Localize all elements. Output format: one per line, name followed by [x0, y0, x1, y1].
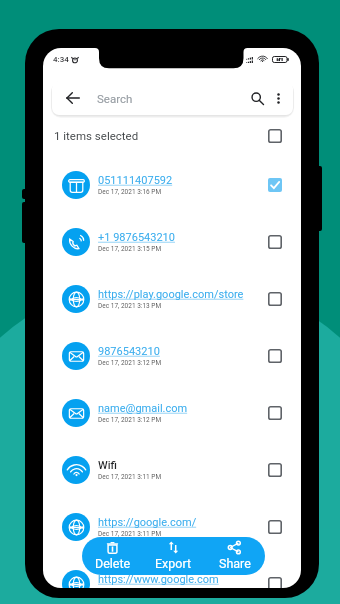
staticText: https://play.google.com/store	[98, 288, 244, 301]
button[interactable]: Select item	[268, 292, 282, 306]
staticText: Dec 17, 2021 3:12 PM	[98, 359, 162, 367]
staticText: Dec 17, 2021 3:16 PM	[98, 188, 162, 196]
button[interactable]: 051111407592	[43, 156, 301, 213]
button[interactable]: 9876543210	[43, 327, 301, 384]
staticText: Export	[155, 556, 192, 571]
staticText: https://www.google.com	[98, 573, 219, 586]
staticText: 4:34	[53, 55, 69, 64]
staticText: Dec 17, 2021 3:15 PM	[98, 245, 162, 253]
staticText: 1 items selected	[54, 129, 139, 142]
staticText: 9876543210	[98, 345, 160, 358]
staticText: Dec 17, 2021 3:11 PM	[98, 473, 162, 481]
button[interactable]: Wifi	[43, 441, 301, 498]
button[interactable]: Select item	[268, 406, 282, 420]
button[interactable]: Delete	[82, 537, 143, 575]
button[interactable]: https://www.google.com	[43, 555, 301, 588]
button[interactable]: +1 9876543210	[43, 213, 301, 270]
staticText: Delete	[95, 556, 131, 571]
staticText: 051111407592	[98, 174, 173, 187]
button[interactable]: https://google.com/	[43, 498, 301, 555]
staticText: Dec 17, 2021 3:12 PM	[98, 416, 162, 424]
button[interactable]: Search	[246, 87, 268, 109]
button[interactable]: Export	[143, 537, 204, 575]
button[interactable]: Back	[62, 87, 84, 109]
staticText: name@gmail.com	[98, 402, 188, 415]
staticText: Wifi	[98, 459, 117, 472]
staticText: https://google.com/	[98, 516, 197, 529]
staticText: Search	[97, 92, 133, 105]
button[interactable]: Select item	[268, 577, 282, 588]
button[interactable]: Share	[204, 537, 265, 575]
button[interactable]: Select item	[268, 520, 282, 534]
staticText: +1 9876543210	[98, 231, 175, 244]
button[interactable]: https://play.google.com/store	[43, 270, 301, 327]
staticText: Share	[219, 556, 251, 571]
button[interactable]: Select item	[268, 235, 282, 249]
button[interactable]: name@gmail.com	[43, 384, 301, 441]
button[interactable]: Back	[52, 81, 293, 115]
button[interactable]: Select all	[268, 129, 282, 143]
button[interactable]: Select item	[268, 178, 282, 192]
button[interactable]: Select item	[268, 349, 282, 363]
staticText: Dec 17, 2021 3:13 PM	[98, 302, 162, 310]
button[interactable]: More options	[268, 88, 288, 108]
button[interactable]: Select item	[268, 463, 282, 477]
staticText: Dec 17, 2021 3:11 PM	[98, 530, 162, 538]
